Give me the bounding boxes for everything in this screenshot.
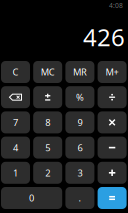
button[interactable]: Equals	[98, 187, 127, 209]
staticText: C	[12, 66, 18, 78]
button[interactable]: 4	[1, 137, 30, 159]
button[interactable]: .	[65, 187, 94, 209]
button[interactable]: M+	[98, 61, 127, 83]
button[interactable]: 6	[65, 137, 94, 159]
staticText: 9	[77, 116, 82, 129]
staticText: MC	[41, 66, 55, 78]
button[interactable]: Divide	[98, 86, 127, 108]
button[interactable]: 0	[1, 187, 62, 209]
staticText: 3	[77, 167, 82, 179]
staticText: 4	[13, 141, 18, 154]
staticText: %	[76, 91, 84, 103]
staticText: 2	[45, 167, 50, 179]
staticText: MR	[73, 66, 87, 78]
button[interactable]: 1	[1, 162, 30, 184]
staticText: 5	[45, 141, 50, 154]
button[interactable]: C	[1, 61, 30, 83]
button[interactable]: 8	[33, 111, 62, 133]
staticText: M+	[106, 66, 119, 78]
button[interactable]: 7	[1, 111, 30, 133]
button[interactable]: 9	[65, 111, 94, 133]
staticText: 8	[45, 116, 50, 129]
button[interactable]: Minus	[98, 137, 127, 159]
button[interactable]: %	[65, 86, 94, 108]
button[interactable]: 2	[33, 162, 62, 184]
staticText: 426	[83, 21, 125, 53]
button[interactable]: Plus minus	[33, 86, 62, 108]
button[interactable]: MC	[33, 61, 62, 83]
button[interactable]: 5	[33, 137, 62, 159]
staticText: 7	[13, 116, 18, 129]
button[interactable]: Multiply	[98, 111, 127, 133]
button[interactable]: Delete	[1, 86, 30, 108]
staticText: 4:08	[109, 1, 123, 10]
button[interactable]: 3	[65, 162, 94, 184]
button[interactable]: Plus	[98, 162, 127, 184]
button[interactable]: MR	[65, 61, 94, 83]
staticText: 1	[13, 167, 18, 179]
staticText: 0	[29, 192, 34, 204]
staticText: .	[78, 192, 81, 204]
staticText: 6	[77, 141, 82, 154]
